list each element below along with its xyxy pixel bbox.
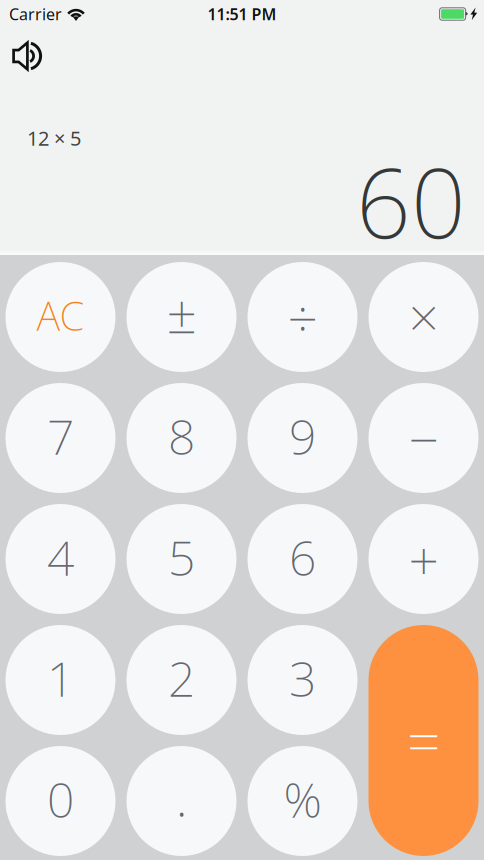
button[interactable]: 6	[247, 504, 357, 614]
staticText: 1	[47, 646, 74, 710]
staticText: 2	[168, 646, 195, 710]
button[interactable]: 7	[5, 383, 115, 493]
staticText: ÷	[287, 282, 317, 352]
staticText: 9	[289, 404, 316, 468]
button[interactable]: ×	[368, 262, 478, 372]
staticText: ×	[408, 281, 438, 352]
button[interactable]: 5	[126, 504, 236, 614]
button[interactable]: +	[368, 504, 478, 614]
button[interactable]: 9	[247, 383, 357, 493]
button[interactable]: =	[368, 625, 478, 856]
button[interactable]: 0	[5, 746, 115, 856]
staticText: 60	[356, 137, 466, 265]
staticText: 3	[289, 646, 316, 710]
staticText: 6	[289, 525, 316, 589]
staticText: =	[407, 701, 440, 779]
button[interactable]: 4	[5, 504, 115, 614]
staticText: 5	[168, 525, 195, 589]
staticText: .	[175, 760, 187, 831]
staticText: −	[408, 403, 438, 474]
staticText: +	[408, 524, 438, 595]
button[interactable]: ±	[126, 262, 236, 372]
button[interactable]: ÷	[247, 262, 357, 372]
button[interactable]: 2	[126, 625, 236, 735]
button[interactable]: 8	[126, 383, 236, 493]
button[interactable]: .	[126, 746, 236, 856]
button[interactable]: AC	[5, 262, 115, 372]
button[interactable]: Sound on	[11, 40, 42, 71]
staticText: 4	[47, 525, 74, 589]
button[interactable]: %	[247, 746, 357, 856]
staticText: 0	[47, 767, 74, 831]
button[interactable]: −	[368, 383, 478, 493]
staticText: 12 × 5	[27, 125, 81, 151]
button[interactable]: 3	[247, 625, 357, 735]
staticText: 11:51 PM	[207, 3, 276, 25]
staticText: 7	[47, 404, 74, 468]
staticText: 8	[168, 404, 195, 468]
staticText: AC	[36, 289, 84, 342]
staticText: Carrier	[9, 3, 62, 25]
staticText: ±	[166, 277, 196, 348]
staticText: %	[283, 767, 321, 831]
button[interactable]: 1	[5, 625, 115, 735]
